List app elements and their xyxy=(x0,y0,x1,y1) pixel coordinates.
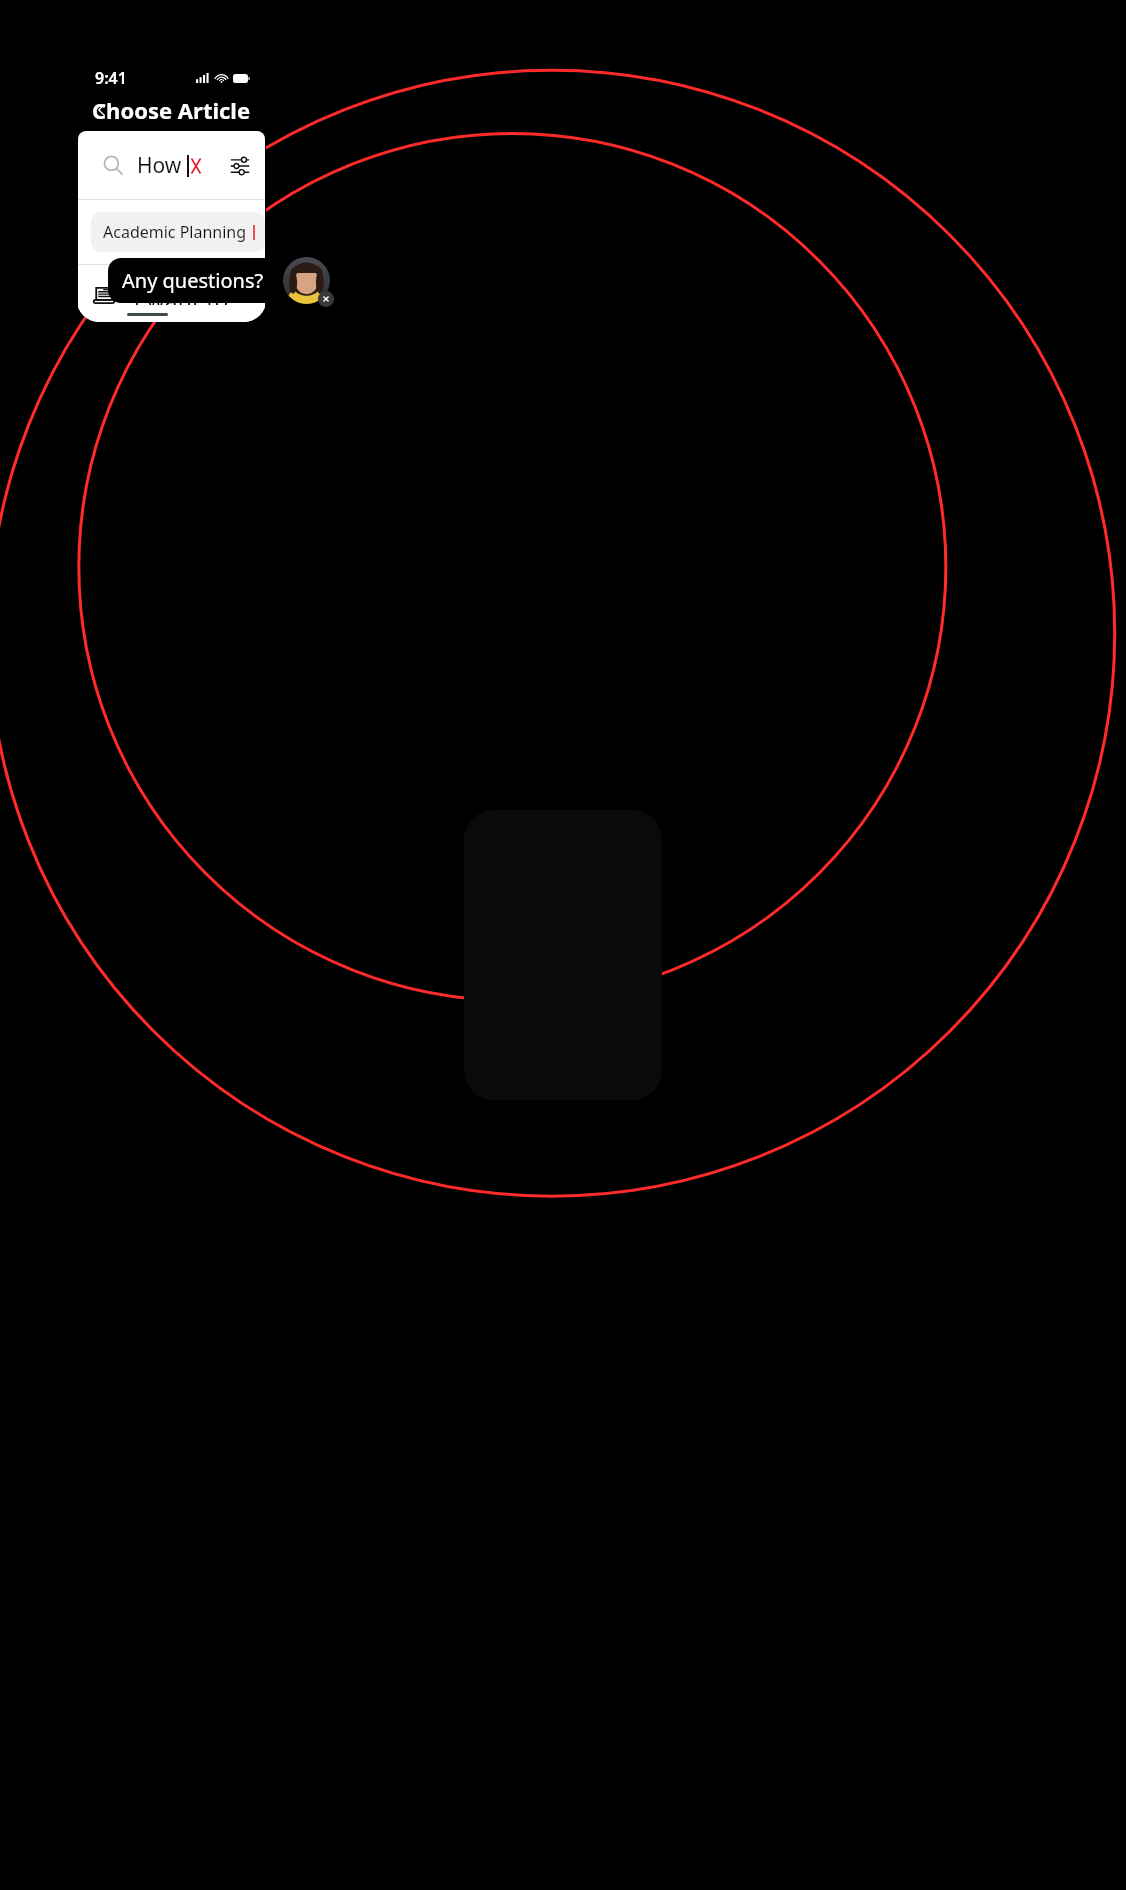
button[interactable]: How xyxy=(91,143,215,188)
staticText: 9:41 xyxy=(95,67,127,89)
button[interactable]: Chat with assistant xyxy=(283,257,330,304)
staticText: I want to change my Major xyxy=(133,284,249,305)
button[interactable]: Back xyxy=(85,93,119,127)
button[interactable]: Any questions? xyxy=(108,258,278,303)
staticText: Choose Article xyxy=(92,95,251,125)
staticText: Any questions? xyxy=(122,267,264,294)
button[interactable]: I want to change my Major xyxy=(78,265,265,322)
button[interactable]: Clear search xyxy=(189,153,203,179)
button[interactable]: Close chat xyxy=(318,291,334,307)
staticText: Academic Planning xyxy=(103,221,247,243)
staticText: How xyxy=(137,151,187,180)
button[interactable]: Filter xyxy=(224,150,256,182)
button[interactable]: Academic Planning xyxy=(91,212,265,252)
